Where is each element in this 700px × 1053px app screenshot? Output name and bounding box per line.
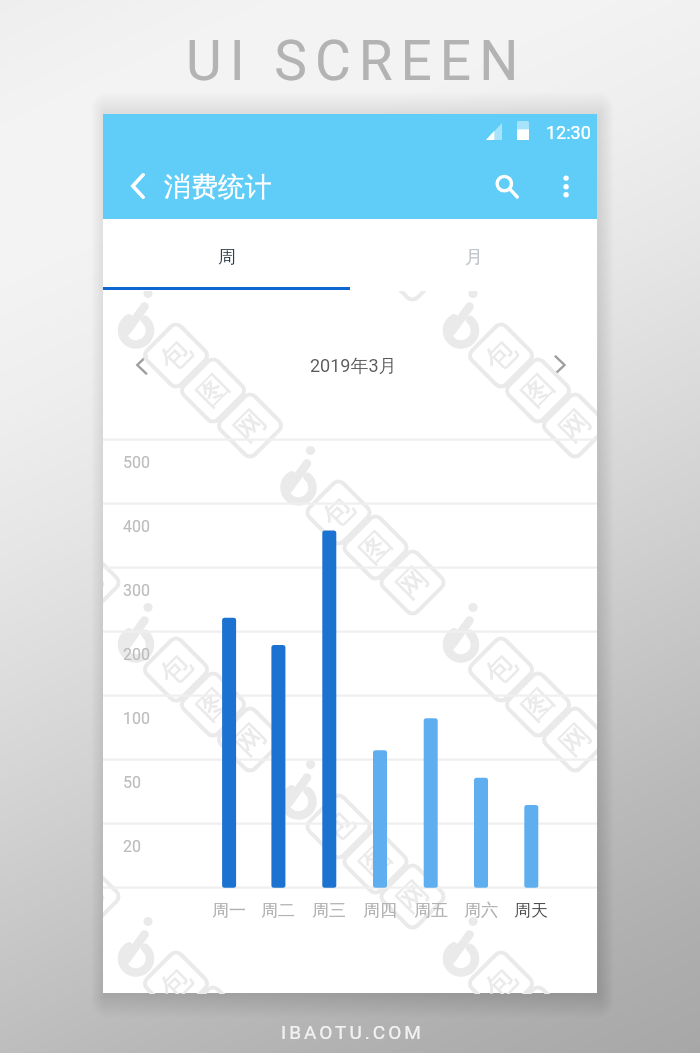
button[interactable]: Next month [548,348,576,382]
staticText: 500 [123,453,150,472]
staticText: 周一 [212,900,246,921]
staticText: 400 [123,517,150,536]
staticText: 消费统计 [164,170,272,204]
button[interactable]: Previous month [130,348,158,382]
staticText: 周六 [464,900,498,921]
button[interactable]: 周 [103,219,350,290]
button[interactable]: Search [490,169,524,205]
staticText: 300 [123,581,150,600]
staticText: 周二 [261,900,295,921]
staticText: 周天 [514,900,548,921]
staticText: 20 [123,837,141,856]
staticText: 周三 [312,900,346,921]
staticText: 100 [123,709,150,728]
button[interactable]: 月 [350,219,597,290]
staticText: UI SCREEN [186,29,527,93]
button[interactable]: More options [552,168,580,206]
staticText: IBAOTU.COM [281,1021,424,1043]
button[interactable]: Back [126,168,158,205]
staticText: 200 [123,645,150,664]
staticText: 12:30 [546,122,591,143]
staticText: 周四 [363,900,397,921]
staticText: 月 [465,246,483,269]
staticText: 周五 [414,900,448,921]
staticText: 2019年3月 [310,355,397,378]
staticText: 50 [123,773,141,792]
staticText: 周 [218,246,236,269]
